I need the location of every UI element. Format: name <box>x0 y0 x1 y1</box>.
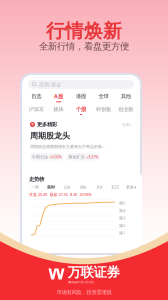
staticText: + <box>31 121 34 128</box>
staticText: 五日 <box>111 185 119 190</box>
staticText: 8.30 <box>70 192 77 197</box>
staticText: 第1 <box>119 230 125 236</box>
button[interactable]: 板块 <box>47 106 70 115</box>
staticText: 市场有风险，投资需谨慎 <box>56 289 111 295</box>
staticText: 第2 <box>119 223 125 228</box>
staticText: 科创板 <box>96 106 111 113</box>
staticText: 创业板 <box>118 106 133 113</box>
staticText: 日K <box>64 185 70 190</box>
staticText: 走势榜 <box>29 176 44 183</box>
button[interactable]: 港股 <box>70 93 92 102</box>
button[interactable]: 个股 <box>70 106 92 115</box>
staticText: 中国石油 <box>32 154 48 159</box>
button[interactable]: 周K <box>75 185 91 190</box>
button[interactable]: 自选 <box>25 93 47 102</box>
staticText: 一周 <box>31 185 39 190</box>
staticText: WANLIAN SECURITIES <box>67 280 93 284</box>
button[interactable]: 其他 <box>115 93 137 102</box>
staticText: 全部 › <box>122 122 132 127</box>
staticText: 第4 <box>119 208 125 213</box>
staticText: 29.96% <box>79 192 91 197</box>
staticText: ·· <box>127 223 129 228</box>
staticText: A股 <box>54 93 63 100</box>
staticText: 万联证券 <box>67 264 119 280</box>
staticText: +5.02% <box>49 154 61 159</box>
staticText: 开盘 20.49 <box>29 192 47 197</box>
staticText: 板块 <box>54 106 64 113</box>
staticText: 最新 27.33 <box>49 192 67 197</box>
staticText: 沪深京 <box>29 106 44 113</box>
button[interactable]: 月K <box>91 185 107 190</box>
button[interactable]: 五日 <box>107 185 123 190</box>
staticText: 个股 <box>76 106 86 113</box>
staticText: 自选 <box>31 93 41 100</box>
button[interactable]: 股票/基金 <box>28 80 134 89</box>
button[interactable]: 沪深京 <box>25 106 47 115</box>
button[interactable]: 日K <box>59 185 75 190</box>
button[interactable]: 创业板 <box>115 106 137 115</box>
staticText: 周K <box>80 185 86 190</box>
staticText: 其他 <box>121 93 131 100</box>
staticText: 实时 <box>47 185 55 190</box>
staticText: 更多精彩 <box>37 121 57 128</box>
staticText: 月K <box>96 185 102 190</box>
button[interactable]: 中国石油 <box>30 153 63 160</box>
staticText: 周期股业绩预期增长主要来自于商品的量… <box>30 144 105 149</box>
staticText: 港股 <box>76 93 86 100</box>
staticText: 第3 <box>119 215 125 221</box>
button[interactable]: 更多▾ <box>123 185 139 190</box>
staticText: 全球 <box>98 93 108 100</box>
staticText: 股票/基金 <box>39 81 61 88</box>
staticText: 行情焕新 <box>46 19 122 42</box>
staticText: 更多▾ <box>126 185 136 190</box>
button[interactable]: A股 <box>47 93 70 102</box>
staticText: 周期股龙头 <box>30 131 70 141</box>
staticText: 紫金矿业 <box>68 154 84 159</box>
button[interactable]: 紫金矿业 <box>66 153 100 160</box>
button[interactable]: 一周 <box>27 185 43 190</box>
button[interactable]: + <box>26 121 136 128</box>
staticText: ·· <box>127 208 129 213</box>
staticText: +3.21% <box>86 154 98 159</box>
button[interactable]: 全球 <box>92 93 115 102</box>
button[interactable]: 科创板 <box>92 106 115 115</box>
staticText: 全新行情，看盘更方便 <box>39 41 129 52</box>
button[interactable]: 实时 <box>43 185 59 190</box>
staticText: 第5 <box>119 200 125 206</box>
